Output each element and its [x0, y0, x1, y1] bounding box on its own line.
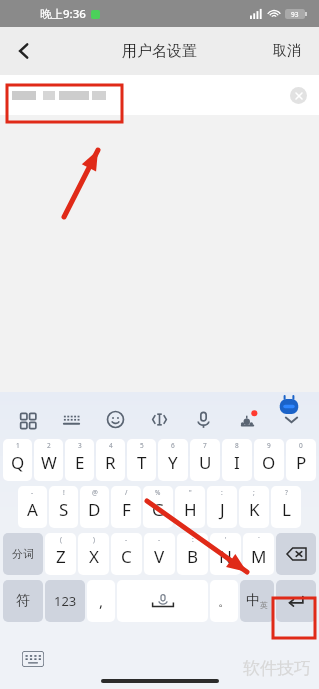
staticText: 2 — [47, 441, 51, 450]
button[interactable]: ! — [49, 486, 78, 528]
staticText: @ — [92, 488, 98, 497]
staticText: W — [41, 451, 57, 474]
staticText: ? — [285, 488, 288, 497]
button[interactable]: - — [18, 486, 47, 528]
staticText: 6 — [171, 441, 175, 450]
staticText: F — [122, 498, 131, 521]
staticText: D — [88, 498, 101, 521]
button[interactable]: 0 — [286, 439, 316, 481]
staticText: 123 — [54, 592, 77, 610]
staticText: 符 — [16, 592, 30, 610]
button[interactable]: " — [175, 486, 205, 528]
staticText: 4 — [109, 441, 113, 450]
button[interactable]: ' — [210, 533, 241, 575]
button[interactable]: Collapse — [269, 402, 313, 436]
staticText: 8 — [235, 441, 239, 450]
button[interactable]: ` — [243, 533, 274, 575]
staticText: 分词 — [12, 547, 34, 561]
staticText: ) — [93, 535, 95, 544]
staticText: E — [75, 451, 85, 474]
button[interactable]: Voice — [181, 402, 225, 436]
staticText: Z — [56, 545, 66, 568]
staticText: , — [99, 591, 104, 611]
button[interactable]: , — [87, 580, 115, 622]
staticText: 英 — [260, 600, 268, 610]
staticText: : — [221, 488, 223, 497]
button[interactable]: 9 — [254, 439, 284, 481]
staticText: N — [219, 545, 232, 568]
staticText: J — [220, 498, 225, 521]
staticText: ' — [225, 535, 227, 544]
staticText: A — [27, 498, 38, 521]
button[interactable]: % — [143, 486, 173, 528]
staticText: 93 — [291, 10, 299, 19]
button[interactable]: 6 — [158, 439, 188, 481]
button[interactable]: - — [111, 533, 142, 575]
button[interactable]: Back — [0, 27, 48, 75]
staticText: ; — [253, 488, 255, 497]
button[interactable]: Backspace — [276, 533, 316, 575]
button[interactable]: Clear — [286, 83, 310, 107]
staticText: 0 — [299, 441, 303, 450]
button[interactable]: 1 — [3, 439, 32, 481]
button[interactable]: 3 — [65, 439, 94, 481]
staticText: X — [89, 545, 99, 568]
button[interactable]: / — [111, 486, 141, 528]
button[interactable]: Keyboard — [49, 402, 93, 436]
button[interactable]: 取消 — [267, 36, 307, 66]
staticText: G — [152, 498, 165, 521]
button[interactable]: - — [144, 533, 175, 575]
staticText: - — [125, 535, 128, 544]
staticText: S — [59, 498, 69, 521]
staticText: 取消 — [273, 42, 301, 60]
staticText: ( — [60, 535, 62, 544]
button[interactable]: ) — [78, 533, 109, 575]
staticText: T — [137, 451, 147, 474]
button[interactable]: 分词 — [3, 533, 43, 575]
button[interactable]: : — [207, 486, 237, 528]
staticText: 1 — [16, 441, 20, 450]
staticText: 7 — [203, 441, 207, 450]
button[interactable]: 5 — [127, 439, 156, 481]
button[interactable]: : — [177, 533, 208, 575]
staticText: 3 — [78, 441, 82, 450]
button[interactable]: Edit — [137, 402, 181, 436]
staticText: C — [121, 545, 132, 568]
button[interactable]: @ — [80, 486, 109, 528]
button[interactable]: 8 — [222, 439, 252, 481]
button[interactable]: Space — [117, 580, 208, 622]
staticText: 晚上9:36 — [40, 6, 86, 22]
staticText: Q — [11, 451, 25, 474]
button[interactable]: 符 — [3, 580, 43, 622]
staticText: V — [154, 545, 165, 568]
staticText: : — [192, 535, 194, 544]
staticText: / — [125, 488, 128, 497]
staticText: I — [234, 451, 240, 474]
button[interactable]: ( — [45, 533, 76, 575]
button[interactable]: Emoji — [93, 402, 137, 436]
button[interactable]: ? — [271, 486, 301, 528]
button[interactable]: 7 — [190, 439, 220, 481]
staticText: O — [262, 451, 276, 474]
staticText: R — [105, 451, 116, 474]
staticText: 。 — [218, 593, 231, 609]
button[interactable]: 4 — [96, 439, 125, 481]
staticText: 5 — [140, 441, 144, 450]
staticText: 软件技巧 — [243, 658, 311, 679]
button[interactable]: Switch keyboard — [22, 651, 44, 667]
staticText: ! — [63, 488, 65, 497]
staticText: M — [251, 545, 267, 568]
staticText: " — [189, 488, 192, 497]
button[interactable]: 123 — [45, 580, 85, 622]
button[interactable]: 中 — [240, 580, 274, 622]
button[interactable]: Stickers — [225, 402, 269, 436]
button[interactable]: ; — [239, 486, 269, 528]
button[interactable]: Apps — [6, 402, 49, 436]
button[interactable]: Assistant — [277, 394, 301, 418]
staticText: 9 — [267, 441, 271, 450]
button[interactable]: Enter — [276, 580, 316, 622]
button[interactable]: 。 — [210, 580, 238, 622]
staticText: P — [296, 451, 307, 474]
button[interactable]: Clear — [0, 75, 319, 115]
button[interactable]: 2 — [34, 439, 63, 481]
